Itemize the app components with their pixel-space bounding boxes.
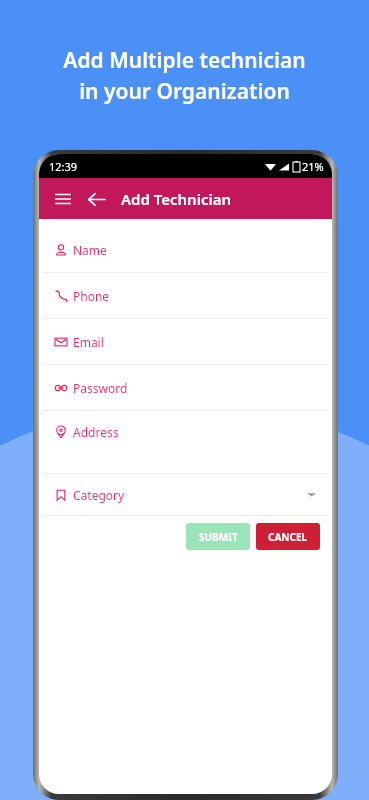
staticText: in your Organization — [79, 77, 290, 106]
button[interactable]: CANCEL — [256, 523, 320, 550]
staticText: 21% — [302, 159, 324, 174]
staticText: Email — [73, 334, 104, 350]
button[interactable]: Password — [43, 365, 328, 410]
button[interactable]: Address — [43, 411, 328, 473]
staticText: 12:39 — [49, 159, 78, 174]
button[interactable]: SUBMIT — [186, 523, 250, 550]
staticText: Password — [73, 380, 128, 396]
staticText: SUBMIT — [199, 530, 238, 544]
button[interactable]: Category — [43, 474, 328, 515]
staticText: Category — [73, 487, 125, 503]
button[interactable]: Back — [81, 184, 111, 214]
staticText: Add Multiple technician — [63, 46, 306, 75]
staticText: Add Technician — [121, 189, 232, 209]
button[interactable]: Email — [43, 319, 328, 364]
button[interactable]: Menu — [49, 185, 77, 213]
staticText: Phone — [73, 288, 110, 304]
button[interactable]: Phone — [43, 273, 328, 318]
button[interactable]: Name — [43, 227, 328, 272]
staticText: CANCEL — [268, 530, 308, 544]
staticText: Name — [73, 242, 107, 258]
staticText: Address — [73, 424, 119, 440]
